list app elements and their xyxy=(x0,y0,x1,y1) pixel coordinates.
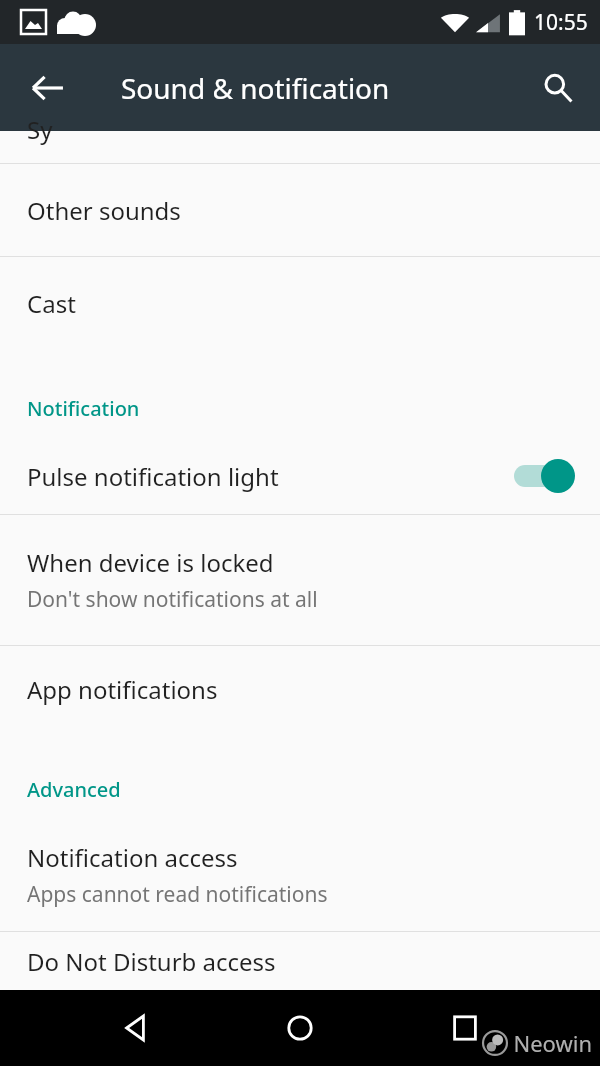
button[interactable]: App notifications xyxy=(0,646,600,732)
staticText: Notification access xyxy=(27,841,238,874)
button[interactable]: When device is locked xyxy=(0,515,600,645)
button[interactable]: Other sounds xyxy=(0,164,600,256)
staticText: Cast xyxy=(27,287,76,320)
staticText: App notifications xyxy=(27,673,218,706)
staticText: Advanced xyxy=(27,776,121,803)
button[interactable]: Cast xyxy=(0,257,600,349)
button[interactable]: Home xyxy=(270,998,330,1058)
button[interactable]: Do Not Disturb access xyxy=(0,932,600,990)
staticText: Notification xyxy=(27,395,140,422)
button[interactable]: Navigate up xyxy=(20,60,76,116)
button[interactable]: Sy xyxy=(0,131,600,163)
staticText: 10:55 xyxy=(534,8,588,37)
staticText: Sound & notification xyxy=(121,69,390,107)
staticText: When device is locked xyxy=(27,546,274,579)
staticText: Neowin xyxy=(513,1028,592,1058)
button[interactable]: Notification access xyxy=(0,819,600,931)
staticText: Other sounds xyxy=(27,194,181,227)
staticText: Pulse notification light xyxy=(27,460,279,493)
button[interactable]: Search xyxy=(530,60,586,116)
button[interactable]: Back xyxy=(105,998,165,1058)
staticText: Do Not Disturb access xyxy=(27,945,276,978)
button[interactable]: Pulse notification light xyxy=(0,438,600,514)
staticText: Sy xyxy=(27,113,53,145)
staticText: Apps cannot read notifications xyxy=(27,880,328,909)
button[interactable]: Recent apps xyxy=(435,998,495,1058)
staticText: Don't show notifications at all xyxy=(27,585,318,614)
